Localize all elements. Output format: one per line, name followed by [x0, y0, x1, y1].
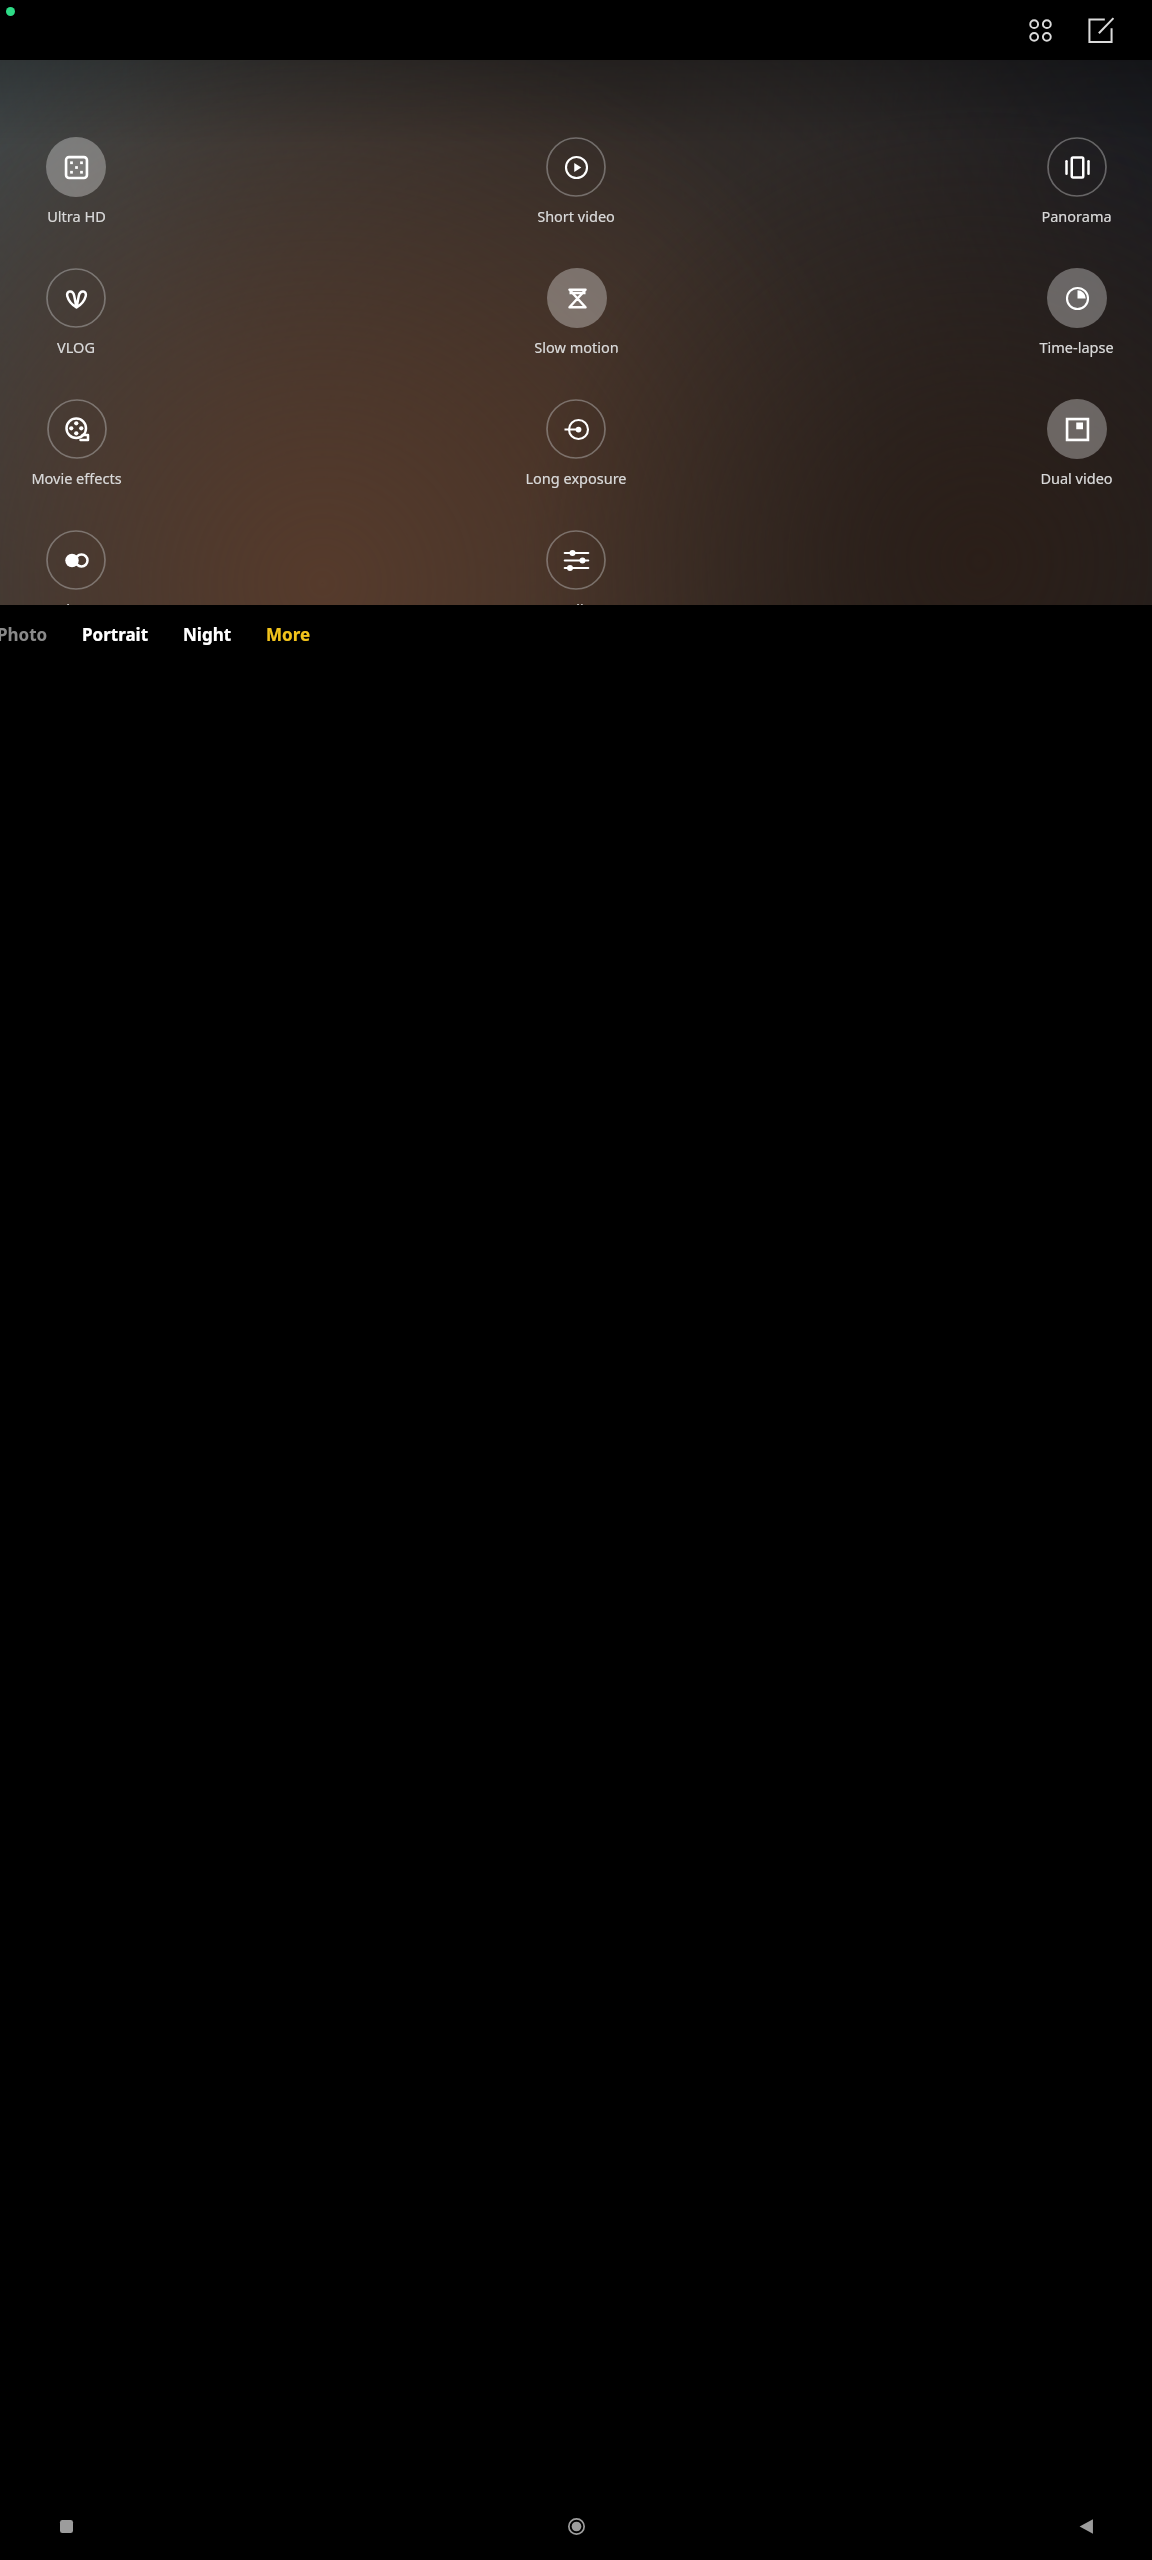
staticText: Movie effects: [31, 468, 122, 488]
staticText: More: [266, 623, 311, 646]
button[interactable]: Movie effects: [29, 399, 124, 488]
button[interactable]: Slow motion: [532, 268, 621, 357]
button[interactable]: Long exposure: [523, 399, 629, 488]
button[interactable]: VLOG: [44, 268, 108, 357]
staticText: VLOG: [57, 337, 95, 357]
button[interactable]: Dual video: [1038, 399, 1115, 488]
staticText: Photo: [0, 623, 48, 646]
staticText: Dual video: [1040, 468, 1113, 488]
button[interactable]: Camera modes grid: [1016, 6, 1064, 54]
button[interactable]: Night: [166, 614, 249, 655]
button[interactable]: Edit camera modes: [1076, 6, 1124, 54]
staticText: Ultra HD: [47, 206, 106, 226]
staticText: Time-lapse: [1039, 337, 1114, 357]
button[interactable]: Back: [1060, 2500, 1112, 2552]
button[interactable]: Portrait: [65, 614, 166, 655]
staticText: Slow motion: [534, 337, 619, 357]
button[interactable]: Panorama: [1039, 137, 1114, 226]
staticText: Clone: [57, 599, 96, 605]
button[interactable]: Home: [550, 2500, 602, 2552]
button[interactable]: Time-lapse: [1037, 268, 1116, 357]
button[interactable]: Recents: [40, 2500, 92, 2552]
staticText: Panorama: [1041, 206, 1112, 226]
staticText: Long exposure: [525, 468, 627, 488]
button[interactable]: Edit: [544, 530, 608, 605]
button[interactable]: Short video: [535, 137, 617, 226]
staticText: Portrait: [82, 623, 149, 646]
staticText: Edit: [563, 599, 589, 605]
button[interactable]: More: [249, 614, 328, 655]
button[interactable]: Ultra HD: [44, 137, 108, 226]
staticText: Short video: [537, 206, 615, 226]
button[interactable]: Clone: [44, 530, 108, 605]
button[interactable]: Photo: [0, 614, 65, 655]
staticText: Night: [183, 623, 232, 646]
